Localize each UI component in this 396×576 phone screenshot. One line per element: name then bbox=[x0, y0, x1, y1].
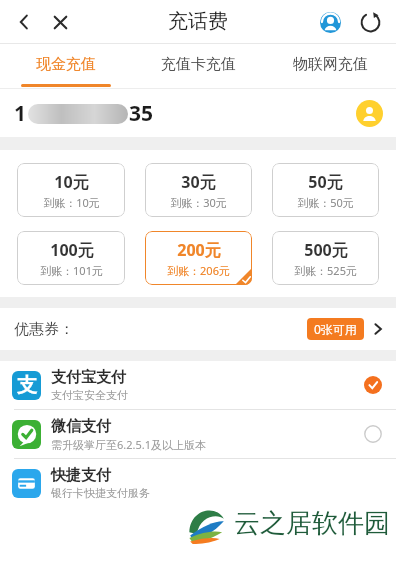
staticText: 支 bbox=[17, 373, 37, 398]
button[interactable]: Account bbox=[354, 98, 384, 128]
staticText: 充话费 bbox=[168, 9, 228, 34]
button[interactable]: 10元 bbox=[17, 163, 125, 217]
staticText: 银行卡快捷支付服务 bbox=[51, 486, 150, 500]
staticText: 到账：50元 bbox=[297, 195, 354, 210]
staticText: 35 bbox=[129, 99, 154, 128]
staticText: 充值卡充值 bbox=[161, 55, 236, 74]
staticText: 到账：206元 bbox=[167, 263, 230, 278]
staticText: 支付宝安全支付 bbox=[51, 388, 128, 402]
button[interactable]: 优惠券： bbox=[0, 308, 396, 350]
staticText: 10元 bbox=[54, 171, 89, 193]
staticText: 优惠券： bbox=[14, 320, 74, 339]
staticText: 需升级掌厅至6.2.5.1及以上版本 bbox=[51, 437, 207, 452]
staticText: 200元 bbox=[177, 239, 221, 261]
staticText: 快捷支付 bbox=[51, 466, 111, 485]
staticText: 支付宝支付 bbox=[51, 368, 126, 387]
staticText: 现金充值 bbox=[36, 55, 96, 74]
button[interactable]: 100元 bbox=[17, 231, 125, 285]
staticText: 1 bbox=[14, 99, 27, 128]
button[interactable]: Customer service bbox=[312, 4, 348, 40]
staticText: 到账：101元 bbox=[40, 263, 103, 278]
button[interactable]: 500元 bbox=[272, 231, 379, 285]
button[interactable]: 30元 bbox=[145, 163, 252, 217]
button[interactable]: 200元 bbox=[145, 231, 252, 285]
staticText: 云之居软件园 bbox=[234, 507, 390, 540]
staticText: 物联网充值 bbox=[293, 55, 368, 74]
button[interactable]: 充值卡充值 bbox=[132, 44, 264, 84]
staticText: 到账：30元 bbox=[170, 195, 227, 210]
staticText: 50元 bbox=[308, 171, 343, 193]
button[interactable]: 微信支付 bbox=[0, 410, 396, 458]
staticText: 到账：10元 bbox=[43, 195, 100, 210]
staticText: 微信支付 bbox=[51, 417, 111, 436]
button[interactable]: 快捷支付 bbox=[0, 459, 396, 507]
staticText: 30元 bbox=[181, 171, 216, 193]
staticText: 0张可用 bbox=[314, 321, 357, 337]
button[interactable]: Refresh bbox=[352, 4, 388, 40]
staticText: 到账：525元 bbox=[294, 263, 357, 278]
button[interactable]: Close bbox=[42, 4, 78, 40]
button[interactable]: 物联网充值 bbox=[264, 44, 396, 84]
staticText: 500元 bbox=[304, 239, 348, 261]
button[interactable]: 支 bbox=[0, 361, 396, 409]
staticText: 100元 bbox=[50, 239, 94, 261]
button[interactable]: Back bbox=[6, 4, 42, 40]
button[interactable]: 50元 bbox=[272, 163, 379, 217]
button[interactable]: 现金充值 bbox=[0, 44, 132, 84]
